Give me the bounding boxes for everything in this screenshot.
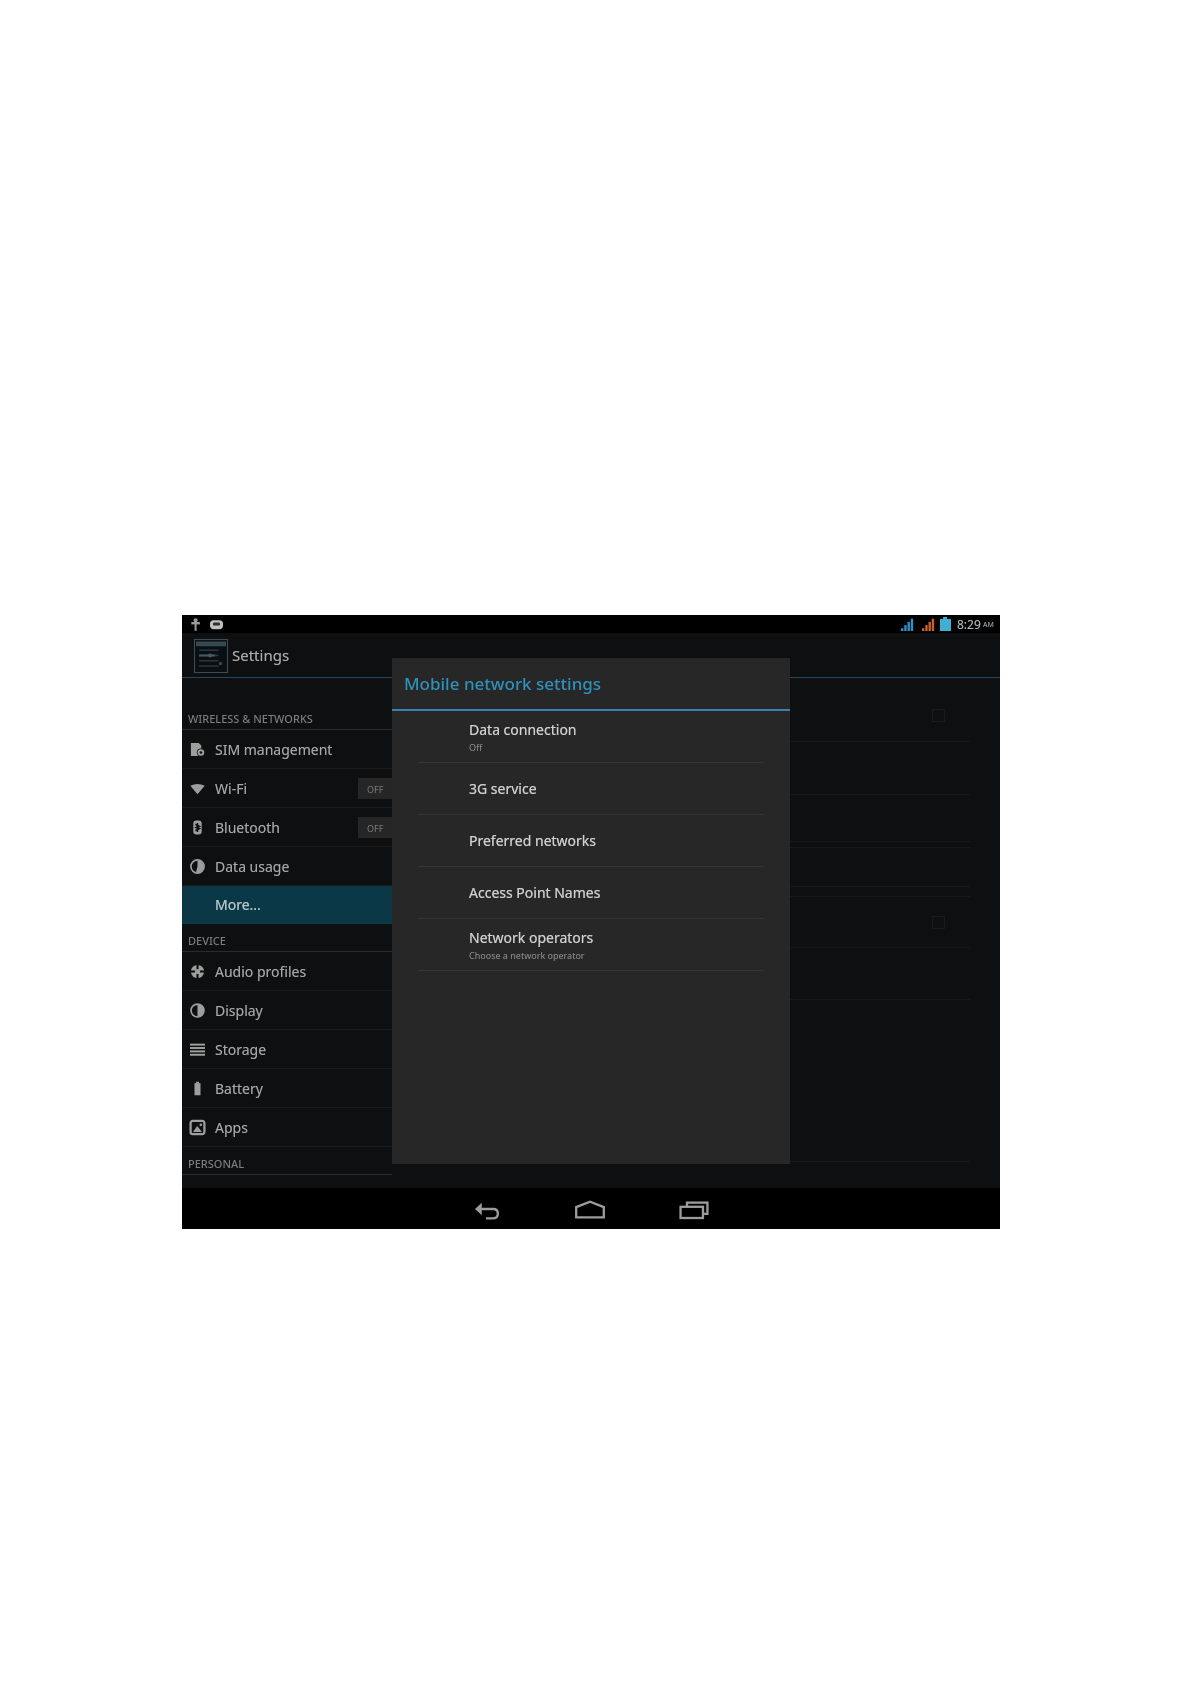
button[interactable]: Back bbox=[458, 1188, 518, 1229]
button[interactable] bbox=[392, 742, 970, 794]
staticText: Off bbox=[469, 741, 483, 753]
button[interactable] bbox=[392, 948, 970, 999]
staticText: 8:29 bbox=[957, 616, 981, 632]
staticText: DEVICE bbox=[188, 933, 226, 948]
staticText: PERSONAL bbox=[188, 1156, 245, 1171]
button[interactable]: Settings bbox=[182, 633, 392, 677]
button[interactable] bbox=[392, 1000, 970, 1161]
staticText: SIM management bbox=[215, 740, 333, 759]
button[interactable]: Apps bbox=[182, 1108, 392, 1146]
staticText: Bluetooth bbox=[215, 818, 280, 837]
button[interactable]: Data usage bbox=[182, 847, 392, 885]
staticText: WIRELESS & NETWORKS bbox=[188, 711, 313, 726]
button[interactable] bbox=[392, 689, 970, 741]
button[interactable]: Access Point Names bbox=[392, 867, 790, 918]
staticText: More... bbox=[215, 895, 261, 914]
staticText: Display bbox=[215, 1001, 263, 1020]
staticText: Data usage bbox=[215, 857, 290, 876]
staticText: Access Point Names bbox=[469, 883, 601, 902]
button[interactable]: SIM management bbox=[182, 730, 392, 768]
staticText: AM bbox=[983, 620, 994, 630]
button[interactable]: Recent apps bbox=[664, 1188, 724, 1229]
button[interactable]: Storage bbox=[182, 1030, 392, 1068]
button[interactable]: Wi-Fi bbox=[182, 769, 392, 807]
staticText: 3G service bbox=[469, 779, 537, 798]
button[interactable]: More... bbox=[182, 886, 392, 923]
button[interactable] bbox=[392, 897, 970, 947]
button[interactable]: Preferred networks bbox=[392, 815, 790, 866]
staticText: Network operators bbox=[469, 928, 594, 947]
button[interactable] bbox=[392, 848, 970, 886]
staticText: Battery bbox=[215, 1079, 263, 1098]
staticText: Settings bbox=[232, 645, 290, 665]
button[interactable] bbox=[392, 842, 970, 847]
staticText: Storage bbox=[215, 1040, 267, 1059]
button[interactable] bbox=[392, 795, 970, 841]
button[interactable]: Audio profiles bbox=[182, 952, 392, 990]
staticText: Preferred networks bbox=[469, 831, 597, 850]
button[interactable]: Display bbox=[182, 991, 392, 1029]
staticText: Data connection bbox=[469, 720, 577, 739]
button[interactable]: 3G service bbox=[392, 763, 790, 814]
button[interactable]: Bluetooth bbox=[182, 808, 392, 846]
button[interactable]: Network operators bbox=[392, 919, 790, 970]
staticText: OFF bbox=[367, 783, 384, 795]
staticText: Wi-Fi bbox=[215, 779, 248, 798]
button[interactable]: Battery bbox=[182, 1069, 392, 1107]
button[interactable]: Data connection bbox=[392, 711, 790, 762]
staticText: Mobile network settings bbox=[404, 672, 602, 695]
button[interactable] bbox=[392, 887, 970, 896]
staticText: Apps bbox=[215, 1118, 248, 1137]
staticText: Choose a network operator bbox=[469, 949, 585, 961]
button[interactable]: Home bbox=[560, 1188, 620, 1229]
staticText: OFF bbox=[367, 822, 384, 834]
staticText: Audio profiles bbox=[215, 962, 307, 981]
